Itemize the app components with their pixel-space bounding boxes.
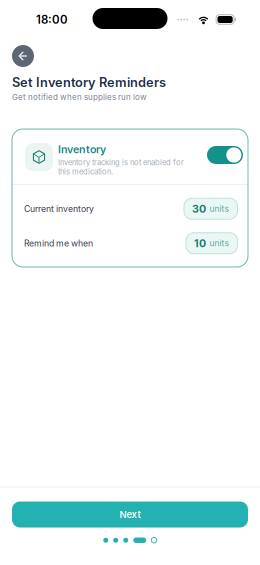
staticText: Set Inventory Reminders xyxy=(12,74,166,90)
staticText: 10 xyxy=(194,237,206,250)
staticText: Inventory tracking is not enabled for th… xyxy=(58,158,184,176)
staticText: units xyxy=(209,238,229,248)
staticText: Next xyxy=(119,509,140,520)
button[interactable]: Next xyxy=(12,501,248,527)
button[interactable]: Back xyxy=(12,45,34,67)
staticText: Get notified when supplies run low xyxy=(12,92,147,102)
staticText: Inventory xyxy=(58,143,106,156)
staticText: units xyxy=(209,204,229,214)
staticText: 18:00 xyxy=(36,13,68,26)
staticText: Current inventory xyxy=(24,203,94,214)
staticText: 30 xyxy=(192,202,206,215)
staticText: Remind me when xyxy=(24,238,93,248)
